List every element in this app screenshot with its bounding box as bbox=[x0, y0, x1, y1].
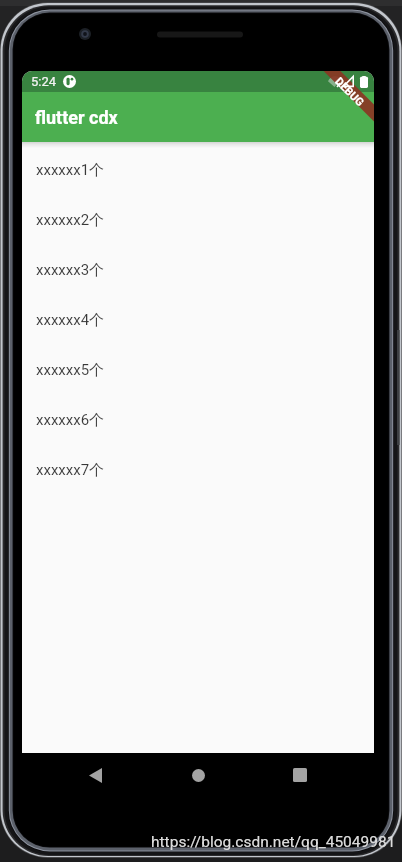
button[interactable]: xxxxxx5个 bbox=[22, 345, 374, 395]
staticText: xxxxxx1个 bbox=[36, 161, 105, 180]
button[interactable]: xxxxxx4个 bbox=[22, 295, 374, 345]
staticText: xxxxxx4个 bbox=[36, 311, 105, 330]
staticText: xxxxxx5个 bbox=[36, 361, 105, 380]
button[interactable]: xxxxxx1个 bbox=[22, 145, 374, 195]
button[interactable]: xxxxxx6个 bbox=[22, 395, 374, 445]
button[interactable]: xxxxxx2个 bbox=[22, 195, 374, 245]
button[interactable]: xxxxxx7个 bbox=[22, 445, 374, 495]
staticText: https://blog.csdn.net/qq_45049981 bbox=[151, 833, 396, 851]
staticText: xxxxxx2个 bbox=[36, 211, 105, 230]
staticText: xxxxxx6个 bbox=[36, 411, 105, 430]
staticText: 5:24 bbox=[31, 74, 57, 89]
button[interactable]: Recent apps bbox=[249, 757, 351, 793]
staticText: flutter cdx bbox=[35, 107, 118, 128]
staticText: xxxxxx3个 bbox=[36, 261, 105, 280]
staticText: DEBUG bbox=[332, 75, 367, 110]
button[interactable]: Back bbox=[44, 757, 147, 793]
button[interactable]: xxxxxx3个 bbox=[22, 245, 374, 295]
staticText: xxxxxx7个 bbox=[36, 461, 105, 480]
button[interactable]: Home bbox=[147, 757, 249, 793]
